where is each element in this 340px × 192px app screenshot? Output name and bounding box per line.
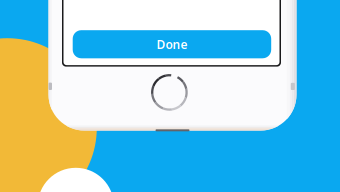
button[interactable]: Done (73, 30, 271, 58)
staticText: Done (156, 36, 187, 52)
